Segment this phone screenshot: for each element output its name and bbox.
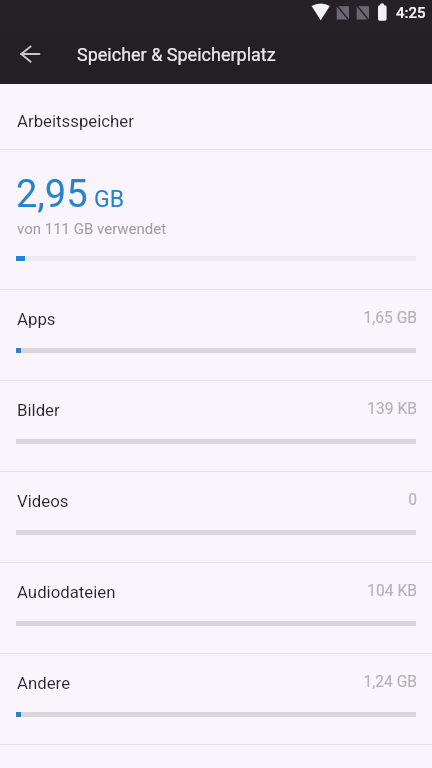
button[interactable] (0, 472, 432, 562)
staticText: von 111 GB verwendet (17, 220, 167, 238)
staticText: 1,24 GB (117, 673, 417, 691)
button[interactable] (0, 381, 432, 471)
button[interactable] (0, 290, 432, 380)
staticText: GB (94, 186, 124, 213)
staticText: Speicher & Speicherplatz (77, 44, 276, 65)
staticText: Audiodateien (17, 582, 116, 602)
staticText: Andere (17, 673, 71, 693)
button[interactable] (0, 150, 432, 289)
staticText: 0 (117, 491, 417, 509)
staticText: Videos (17, 491, 69, 511)
staticText: 104 KB (117, 582, 417, 600)
staticText: 4:25 (396, 4, 426, 22)
staticText: 139 KB (117, 400, 417, 418)
button[interactable]: Zurück (18, 42, 42, 66)
staticText: Arbeitsspeicher (17, 111, 134, 131)
button[interactable] (0, 654, 432, 744)
staticText: Bilder (17, 400, 60, 420)
staticText: Apps (17, 309, 56, 329)
staticText: 1,65 GB (117, 309, 417, 327)
button[interactable] (0, 563, 432, 653)
staticText: 2,95 (16, 172, 88, 217)
button[interactable] (0, 84, 432, 149)
